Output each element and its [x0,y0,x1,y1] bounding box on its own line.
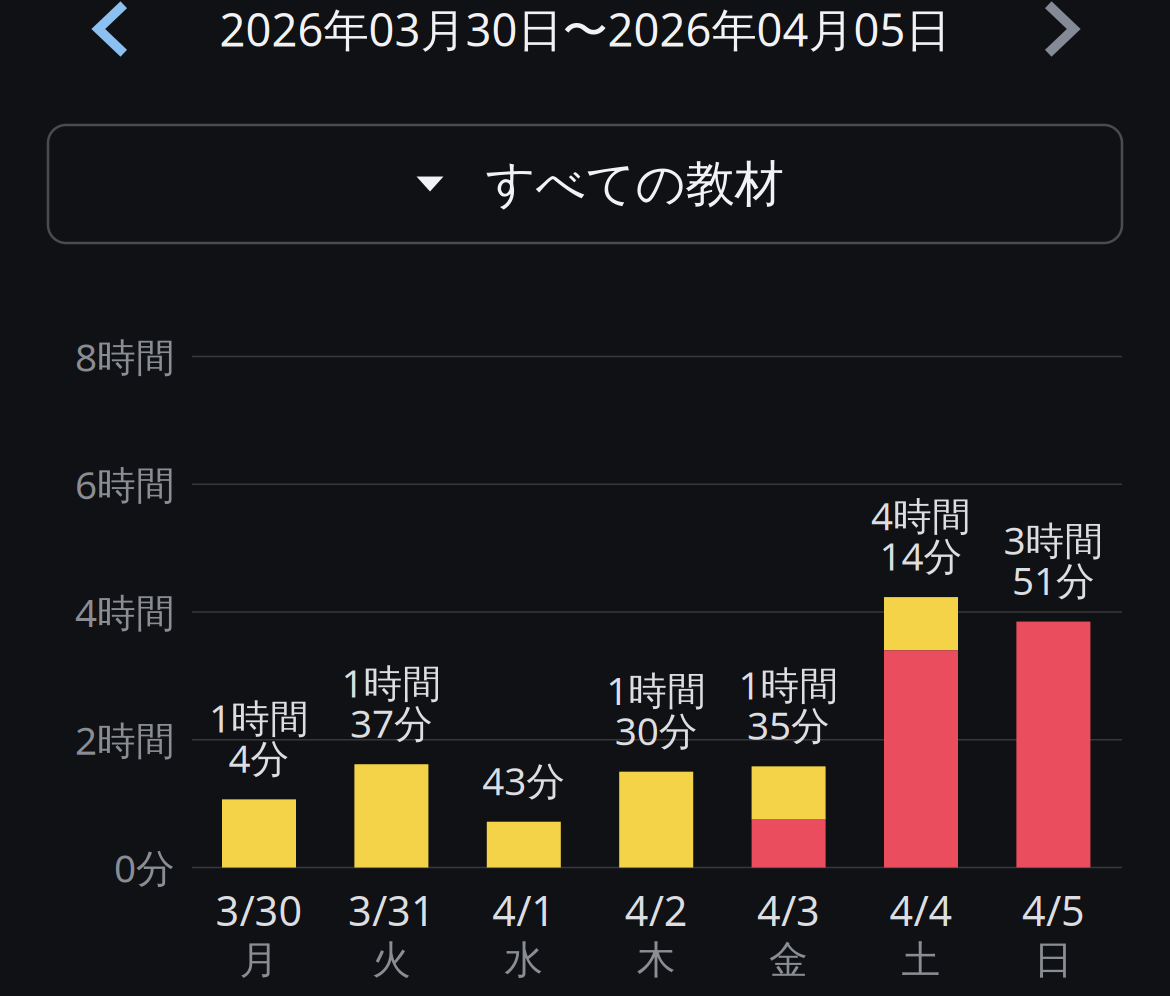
staticText: 4/5 [1022,883,1085,937]
button[interactable]: 前の週 [56,0,166,79]
staticText: 1時間 [739,659,839,710]
staticText: 2026年03月30日〜2026年04月05日 [219,0,950,59]
staticText: 0分 [114,842,175,893]
staticText: 1時間 [209,692,309,743]
staticText: 1時間 [341,657,441,708]
staticText: 51分 [1012,554,1095,606]
staticText: 火 [372,936,411,984]
staticText: 木 [637,936,676,984]
staticText: 土 [901,936,940,984]
staticText: 3時間 [1003,514,1103,565]
staticText: 43分 [482,754,565,806]
button[interactable]: 3/31 火 1時間37分 [325,300,458,996]
button[interactable]: すべての教材 [48,125,1122,243]
staticText: 水 [504,936,543,984]
staticText: すべての教材 [485,154,783,214]
staticText: 3/30 [215,883,302,937]
button[interactable]: 4/1 水 43分 [458,300,590,996]
staticText: 4時間 [871,490,971,541]
button[interactable]: 次の週 [1006,0,1116,79]
staticText: 日 [1034,936,1073,984]
staticText: 4/4 [889,883,952,937]
staticText: 3/31 [348,883,435,937]
staticText: 6時間 [75,459,175,510]
staticText: 月 [239,936,278,984]
staticText: 金 [769,936,808,984]
button[interactable]: 3/30 月 1時間4分 [193,300,325,996]
staticText: 4分 [228,732,289,783]
staticText: 30分 [615,704,698,756]
staticText: 8時間 [75,331,175,382]
button[interactable]: 4/2 木 1時間30分 [590,300,722,996]
staticText: 4/2 [625,883,688,937]
staticText: 35分 [747,699,830,750]
staticText: 1時間 [606,664,706,715]
staticText: 4/3 [757,883,820,937]
staticText: 2時間 [75,714,175,765]
staticText: 4/1 [492,883,555,937]
button[interactable]: 4/4 土 4時間14分 [855,300,987,996]
staticText: 4時間 [75,586,175,638]
staticText: 14分 [879,530,962,581]
staticText: 37分 [350,697,433,748]
button[interactable]: 4/5 日 3時間51分 [987,300,1120,996]
button[interactable]: 4/3 金 1時間35分 [722,300,855,996]
